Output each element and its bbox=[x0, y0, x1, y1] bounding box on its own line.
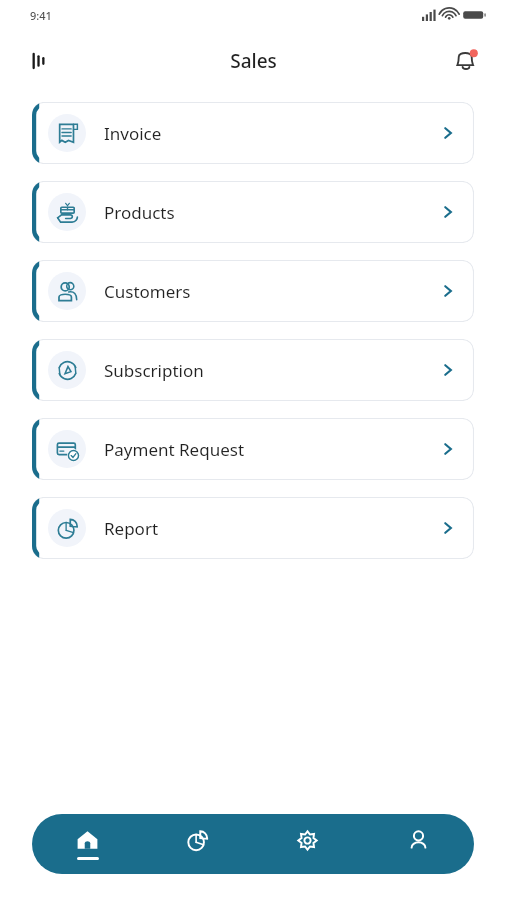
button[interactable]: Profile bbox=[363, 814, 474, 874]
button[interactable]: Analytics bbox=[142, 814, 252, 874]
staticText: 9:41 bbox=[30, 8, 52, 23]
staticText: Payment Request bbox=[104, 438, 245, 461]
staticText: Products bbox=[104, 201, 175, 224]
staticText: Sales bbox=[230, 48, 277, 74]
staticText: Invoice bbox=[104, 122, 162, 145]
staticText: Subscription bbox=[104, 359, 204, 382]
button[interactable]: Payment Request bbox=[32, 418, 474, 480]
button[interactable]: Report bbox=[32, 497, 474, 559]
button[interactable]: Menu bbox=[20, 41, 60, 81]
button[interactable]: Invoice bbox=[32, 102, 474, 164]
staticText: Report bbox=[104, 517, 159, 540]
button[interactable]: Products bbox=[32, 181, 474, 243]
button[interactable]: Notifications bbox=[446, 41, 486, 81]
button[interactable]: Settings bbox=[252, 814, 363, 874]
button[interactable]: Customers bbox=[32, 260, 474, 322]
staticText: Customers bbox=[104, 280, 191, 303]
button[interactable]: Subscription bbox=[32, 339, 474, 401]
button[interactable]: Home bbox=[32, 814, 142, 874]
